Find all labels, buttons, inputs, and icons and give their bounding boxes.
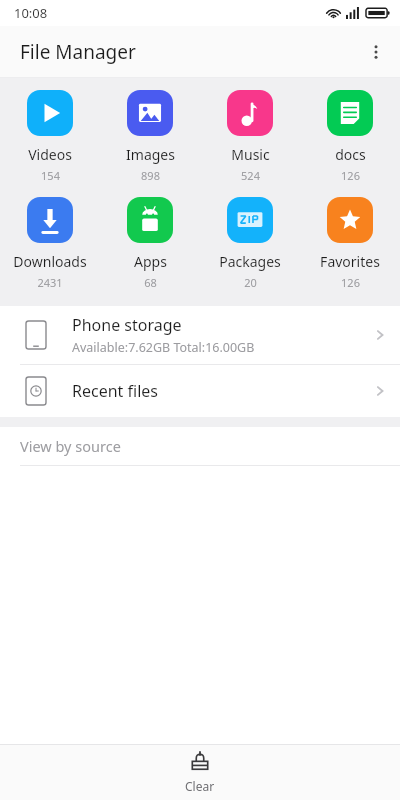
button[interactable]: Recent files: [0, 365, 400, 417]
staticText: Packages: [219, 252, 281, 271]
button[interactable]: More options: [352, 28, 400, 76]
staticText: Images: [126, 145, 175, 164]
button[interactable]: docs: [300, 88, 400, 185]
button[interactable]: Videos: [0, 88, 100, 185]
staticText: File Manager: [20, 39, 136, 65]
staticText: 68: [144, 275, 157, 290]
staticText: Recent files: [72, 380, 158, 402]
staticText: Favorites: [320, 252, 380, 271]
button[interactable]: Music: [200, 88, 300, 185]
staticText: Music: [231, 145, 270, 164]
button[interactable]: Favorites: [300, 195, 400, 292]
staticText: Apps: [134, 252, 167, 271]
button[interactable]: Images: [100, 88, 200, 185]
staticText: 154: [41, 168, 60, 183]
staticText: 20: [244, 275, 257, 290]
button[interactable]: Phone storage: [0, 306, 400, 364]
staticText: 126: [341, 275, 360, 290]
staticText: Available:7.62GB Total:16.00GB: [72, 339, 255, 356]
button[interactable]: Apps: [100, 195, 200, 292]
staticText: Videos: [28, 145, 72, 164]
staticText: 2431: [37, 275, 63, 290]
button[interactable]: Downloads: [0, 195, 100, 292]
button[interactable]: Clear: [140, 745, 260, 800]
staticText: docs: [335, 145, 366, 164]
staticText: View by source: [20, 436, 121, 456]
staticText: Phone storage: [72, 314, 182, 336]
staticText: 126: [341, 168, 360, 183]
staticText: 898: [141, 168, 160, 183]
staticText: 10:08: [14, 4, 48, 22]
staticText: 524: [241, 168, 260, 183]
staticText: Downloads: [13, 252, 87, 271]
button[interactable]: Packages: [200, 195, 300, 292]
staticText: Clear: [185, 778, 215, 794]
